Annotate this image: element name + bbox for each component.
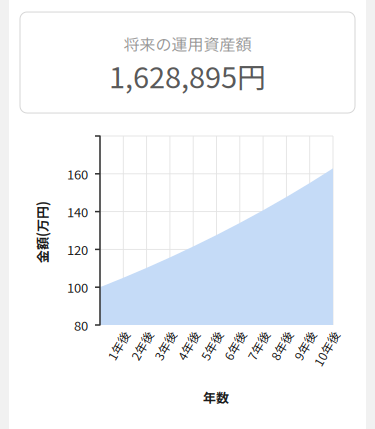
staticText: 5年後	[188, 323, 219, 341]
staticText: 金額(万円)	[11, 223, 73, 241]
staticText: 7年後	[235, 323, 266, 341]
staticText: 年数	[203, 388, 229, 406]
staticText: 8年後	[258, 323, 289, 341]
staticText: 160	[67, 164, 88, 183]
staticText: 9年後	[282, 323, 313, 341]
staticText: 140	[67, 202, 88, 221]
staticText: 将来の運用資産額	[123, 32, 251, 55]
staticText: 3年後	[142, 323, 173, 341]
staticText: 1,628,895円	[109, 54, 266, 96]
staticText: 4年後	[165, 323, 196, 341]
staticText: 2年後	[119, 323, 150, 341]
staticText: 6年後	[212, 323, 243, 341]
button[interactable]: 将来の運用資産額	[20, 12, 355, 113]
staticText: 80	[74, 316, 88, 334]
staticText: 1年後	[95, 323, 126, 341]
staticText: 10年後	[298, 323, 336, 341]
staticText: 100	[67, 278, 88, 297]
staticText: 120	[67, 240, 88, 259]
